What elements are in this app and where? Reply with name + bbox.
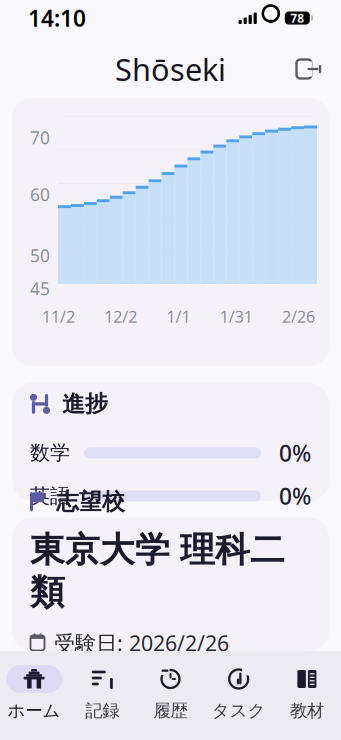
staticText: 記録 (85, 700, 119, 721)
staticText: 0% (279, 481, 311, 511)
button[interactable]: 履歴 (136, 661, 205, 725)
staticText: 60 (30, 183, 50, 206)
staticText: 11/2 (42, 306, 75, 327)
staticText: タスク (212, 700, 266, 721)
staticText: 志望校 (56, 488, 125, 516)
staticText: ホーム (8, 700, 61, 721)
staticText: 2/26 (282, 306, 315, 327)
staticText: 数学 (30, 441, 70, 465)
button[interactable]: Log out (289, 49, 329, 89)
button[interactable]: ホーム (0, 661, 68, 725)
staticText: 履歴 (153, 700, 187, 721)
staticText: 1/31 (220, 306, 253, 327)
staticText: 50 (30, 244, 50, 267)
staticText: 78 (290, 10, 304, 26)
staticText: 14:10 (28, 3, 86, 33)
button[interactable]: タスク (205, 661, 273, 725)
staticText: 1/1 (166, 306, 190, 327)
button[interactable]: 教材 (273, 661, 341, 725)
staticText: 12/2 (104, 306, 137, 327)
staticText: 東京大学 理科二類 (30, 529, 285, 614)
staticText: 70 (30, 126, 50, 149)
staticText: 教材 (290, 700, 324, 721)
button[interactable]: 記録 (68, 661, 136, 725)
staticText: 受験日: 2026/2/26 (54, 629, 229, 657)
staticText: あと 115 日 (55, 668, 175, 698)
staticText: 45 (30, 277, 50, 300)
staticText: 0% (279, 438, 311, 468)
staticText: Shōseki (115, 49, 226, 89)
staticText: 英語 (30, 484, 70, 508)
staticText: 進捗 (62, 390, 108, 418)
